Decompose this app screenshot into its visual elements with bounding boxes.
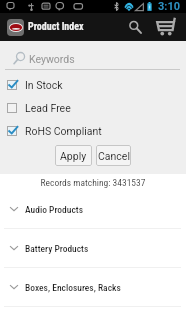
button[interactable]: Search [123, 13, 147, 41]
staticText: Records matching: 3431537 [0, 177, 186, 188]
button[interactable]: Home [7, 19, 24, 36]
button[interactable]: Audio Products [0, 190, 186, 228]
button[interactable]: Apply [55, 145, 92, 166]
button[interactable]: Shopping cart [153, 13, 179, 41]
staticText: Boxes, Enclosures, Racks [25, 282, 121, 293]
staticText: Keywords [29, 53, 75, 65]
staticText: Product Index [28, 21, 84, 33]
staticText: RoHS Compliant [25, 125, 102, 137]
button[interactable]: Keywords [0, 47, 186, 70]
button[interactable]: Cancel [96, 145, 131, 166]
staticText: Audio Products [25, 204, 83, 215]
staticText: Lead Free [25, 102, 71, 114]
button[interactable]: Boxes, Enclosures, Racks [0, 268, 186, 306]
staticText: In Stock [25, 79, 63, 91]
staticText: 3:10 [158, 0, 181, 13]
button[interactable]: In Stock [0, 73, 186, 96]
button[interactable]: RoHS Compliant [0, 119, 186, 142]
staticText: Apply [60, 150, 87, 162]
staticText: Battery Products [25, 243, 89, 254]
staticText: Cancel [98, 150, 130, 162]
button[interactable]: Lead Free [0, 96, 186, 119]
button[interactable]: Battery Products [0, 229, 186, 267]
